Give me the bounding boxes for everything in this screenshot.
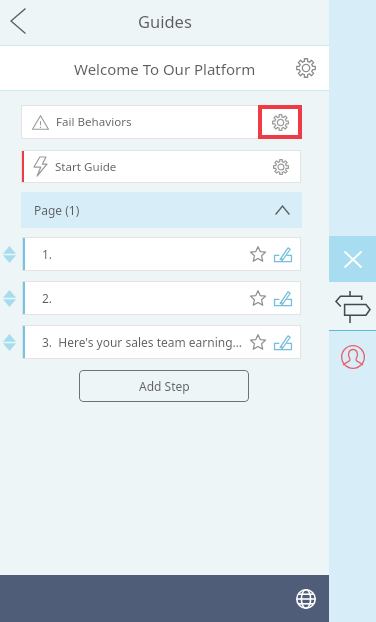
button[interactable]: Profile <box>329 331 376 378</box>
button[interactable]: Edit <box>272 287 294 309</box>
button[interactable]: Add Step <box>79 370 249 402</box>
staticText: 2. <box>42 290 247 306</box>
button[interactable]: Reorder <box>0 237 21 271</box>
button[interactable]: 1. <box>22 237 301 271</box>
button[interactable]: Reorder <box>0 281 21 315</box>
button[interactable]: Reorder <box>0 325 21 359</box>
staticText: Welcome To Our Platform <box>74 59 256 79</box>
button[interactable]: Settings <box>262 109 298 135</box>
button[interactable]: Close <box>329 236 376 282</box>
button[interactable]: Start Guide <box>21 150 301 183</box>
staticText: Guides <box>138 10 192 32</box>
button[interactable]: Fail Behaviors <box>21 105 301 139</box>
button[interactable]: Favorite <box>247 331 269 353</box>
staticText: 1. <box>42 246 247 262</box>
staticText: Page (1) <box>34 202 80 218</box>
button[interactable]: Favorite <box>247 243 269 265</box>
button[interactable]: Settings <box>292 54 320 82</box>
staticText: 3. Here's your sales team earnings. K... <box>42 334 247 350</box>
button[interactable]: Edit <box>272 331 294 353</box>
staticText: Add Step <box>139 378 190 394</box>
staticText: Fail Behaviors <box>56 114 132 130</box>
button[interactable]: 2. <box>22 281 301 315</box>
button[interactable]: 3. Here's your sales team earnings. K... <box>22 325 301 359</box>
button[interactable]: Settings <box>268 154 294 180</box>
button[interactable]: Edit <box>272 243 294 265</box>
staticText: Start Guide <box>55 159 117 175</box>
button[interactable]: Page (1) <box>21 192 302 228</box>
button[interactable]: Collapse <box>270 198 294 222</box>
button[interactable]: Back <box>0 0 38 44</box>
button[interactable]: Guides <box>329 282 376 331</box>
button[interactable]: Language <box>290 583 322 615</box>
button[interactable]: Favorite <box>247 287 269 309</box>
